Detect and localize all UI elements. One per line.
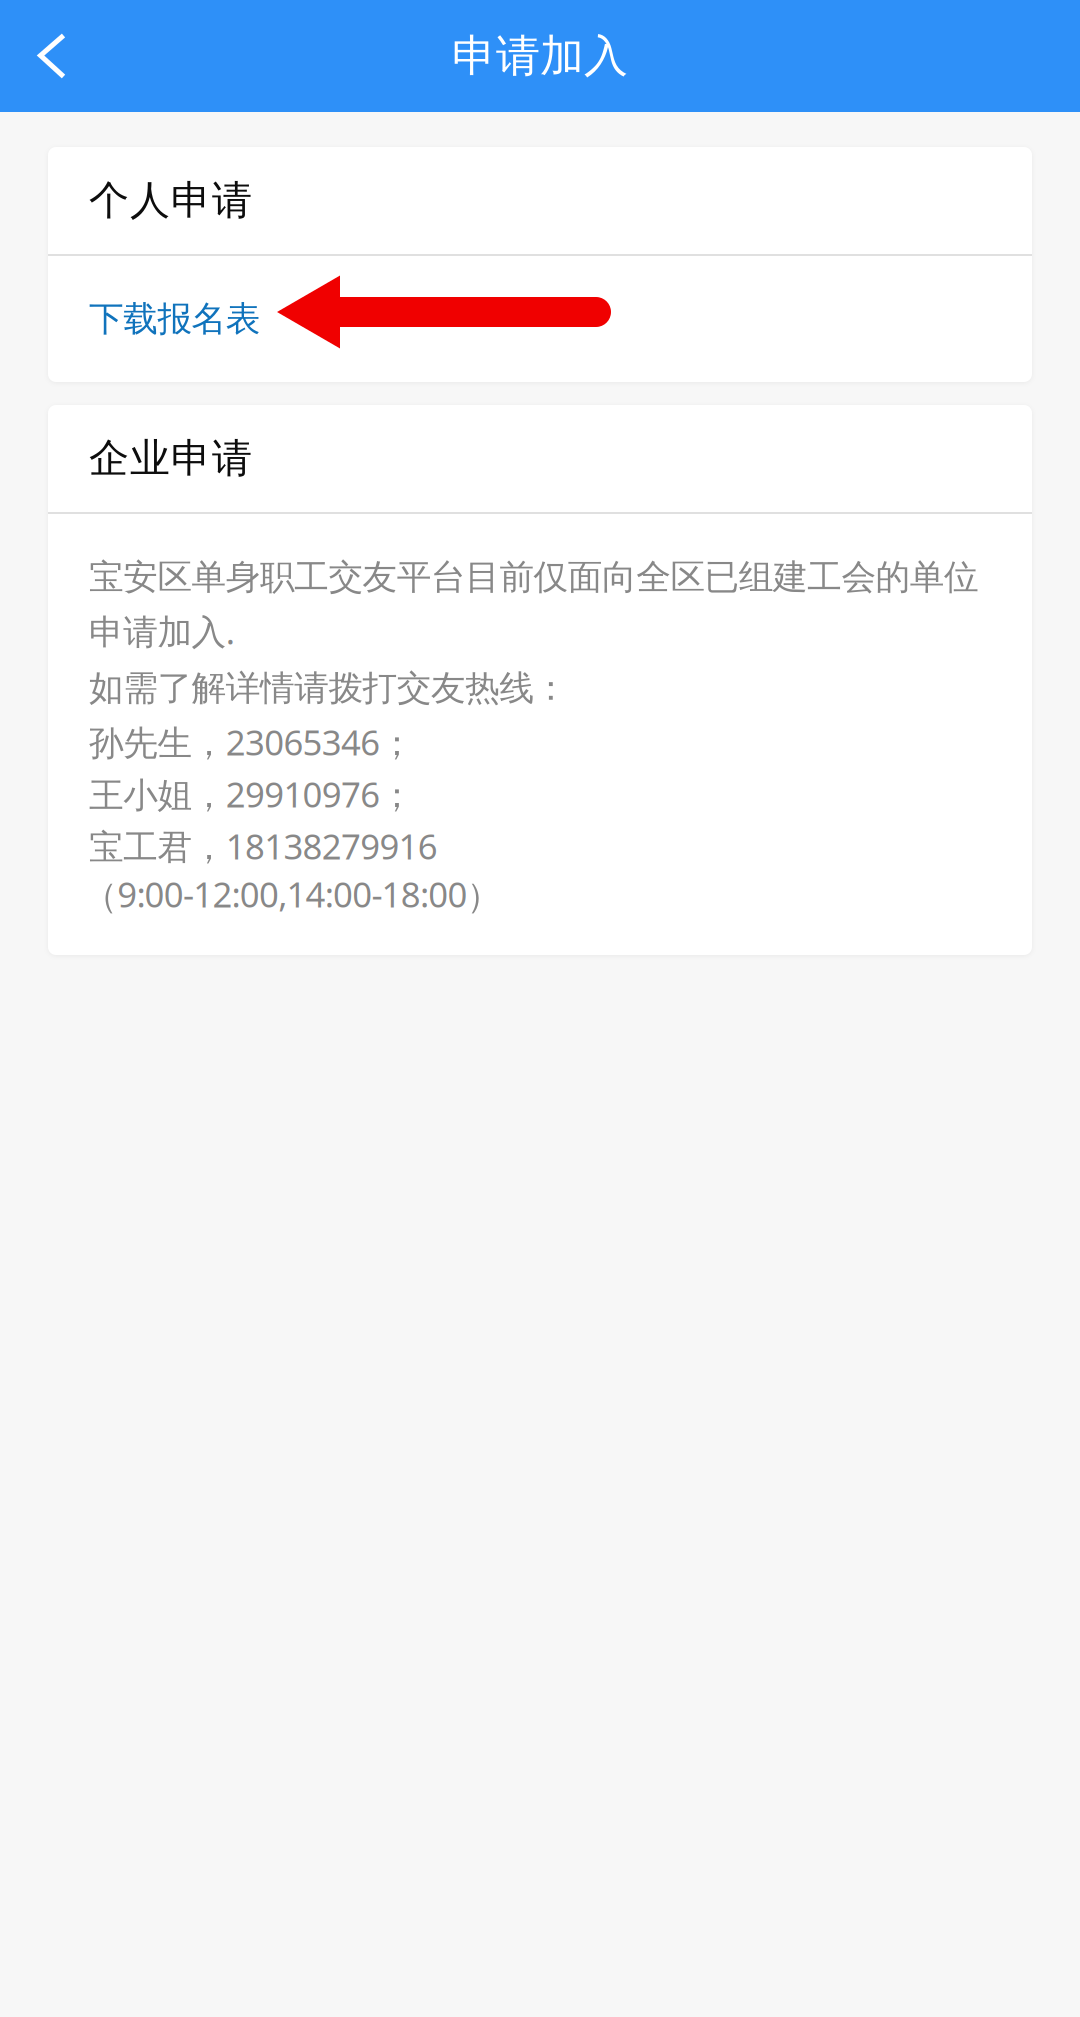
staticText: 申请加入	[452, 29, 628, 83]
staticText: 宝工君，18138279916	[89, 823, 438, 869]
button[interactable]: 下载报名表	[48, 256, 1032, 382]
staticText: 下载报名表	[89, 298, 261, 340]
staticText: （9:00-12:00,14:00-18:00）	[83, 871, 502, 917]
staticText: 如需了解详情请拨打交友热线：	[89, 667, 569, 710]
staticText: 个人申请	[89, 176, 252, 225]
staticText: 王小姐，29910976；	[89, 771, 414, 817]
staticText: 申请加入.	[89, 608, 235, 654]
button[interactable]: 返回	[0, 0, 104, 112]
staticText: 宝安区单身职工交友平台目前仅面向全区已组建工会的单位	[89, 556, 979, 599]
staticText: 企业申请	[89, 434, 252, 483]
staticText: 孙先生，23065346；	[89, 719, 414, 765]
